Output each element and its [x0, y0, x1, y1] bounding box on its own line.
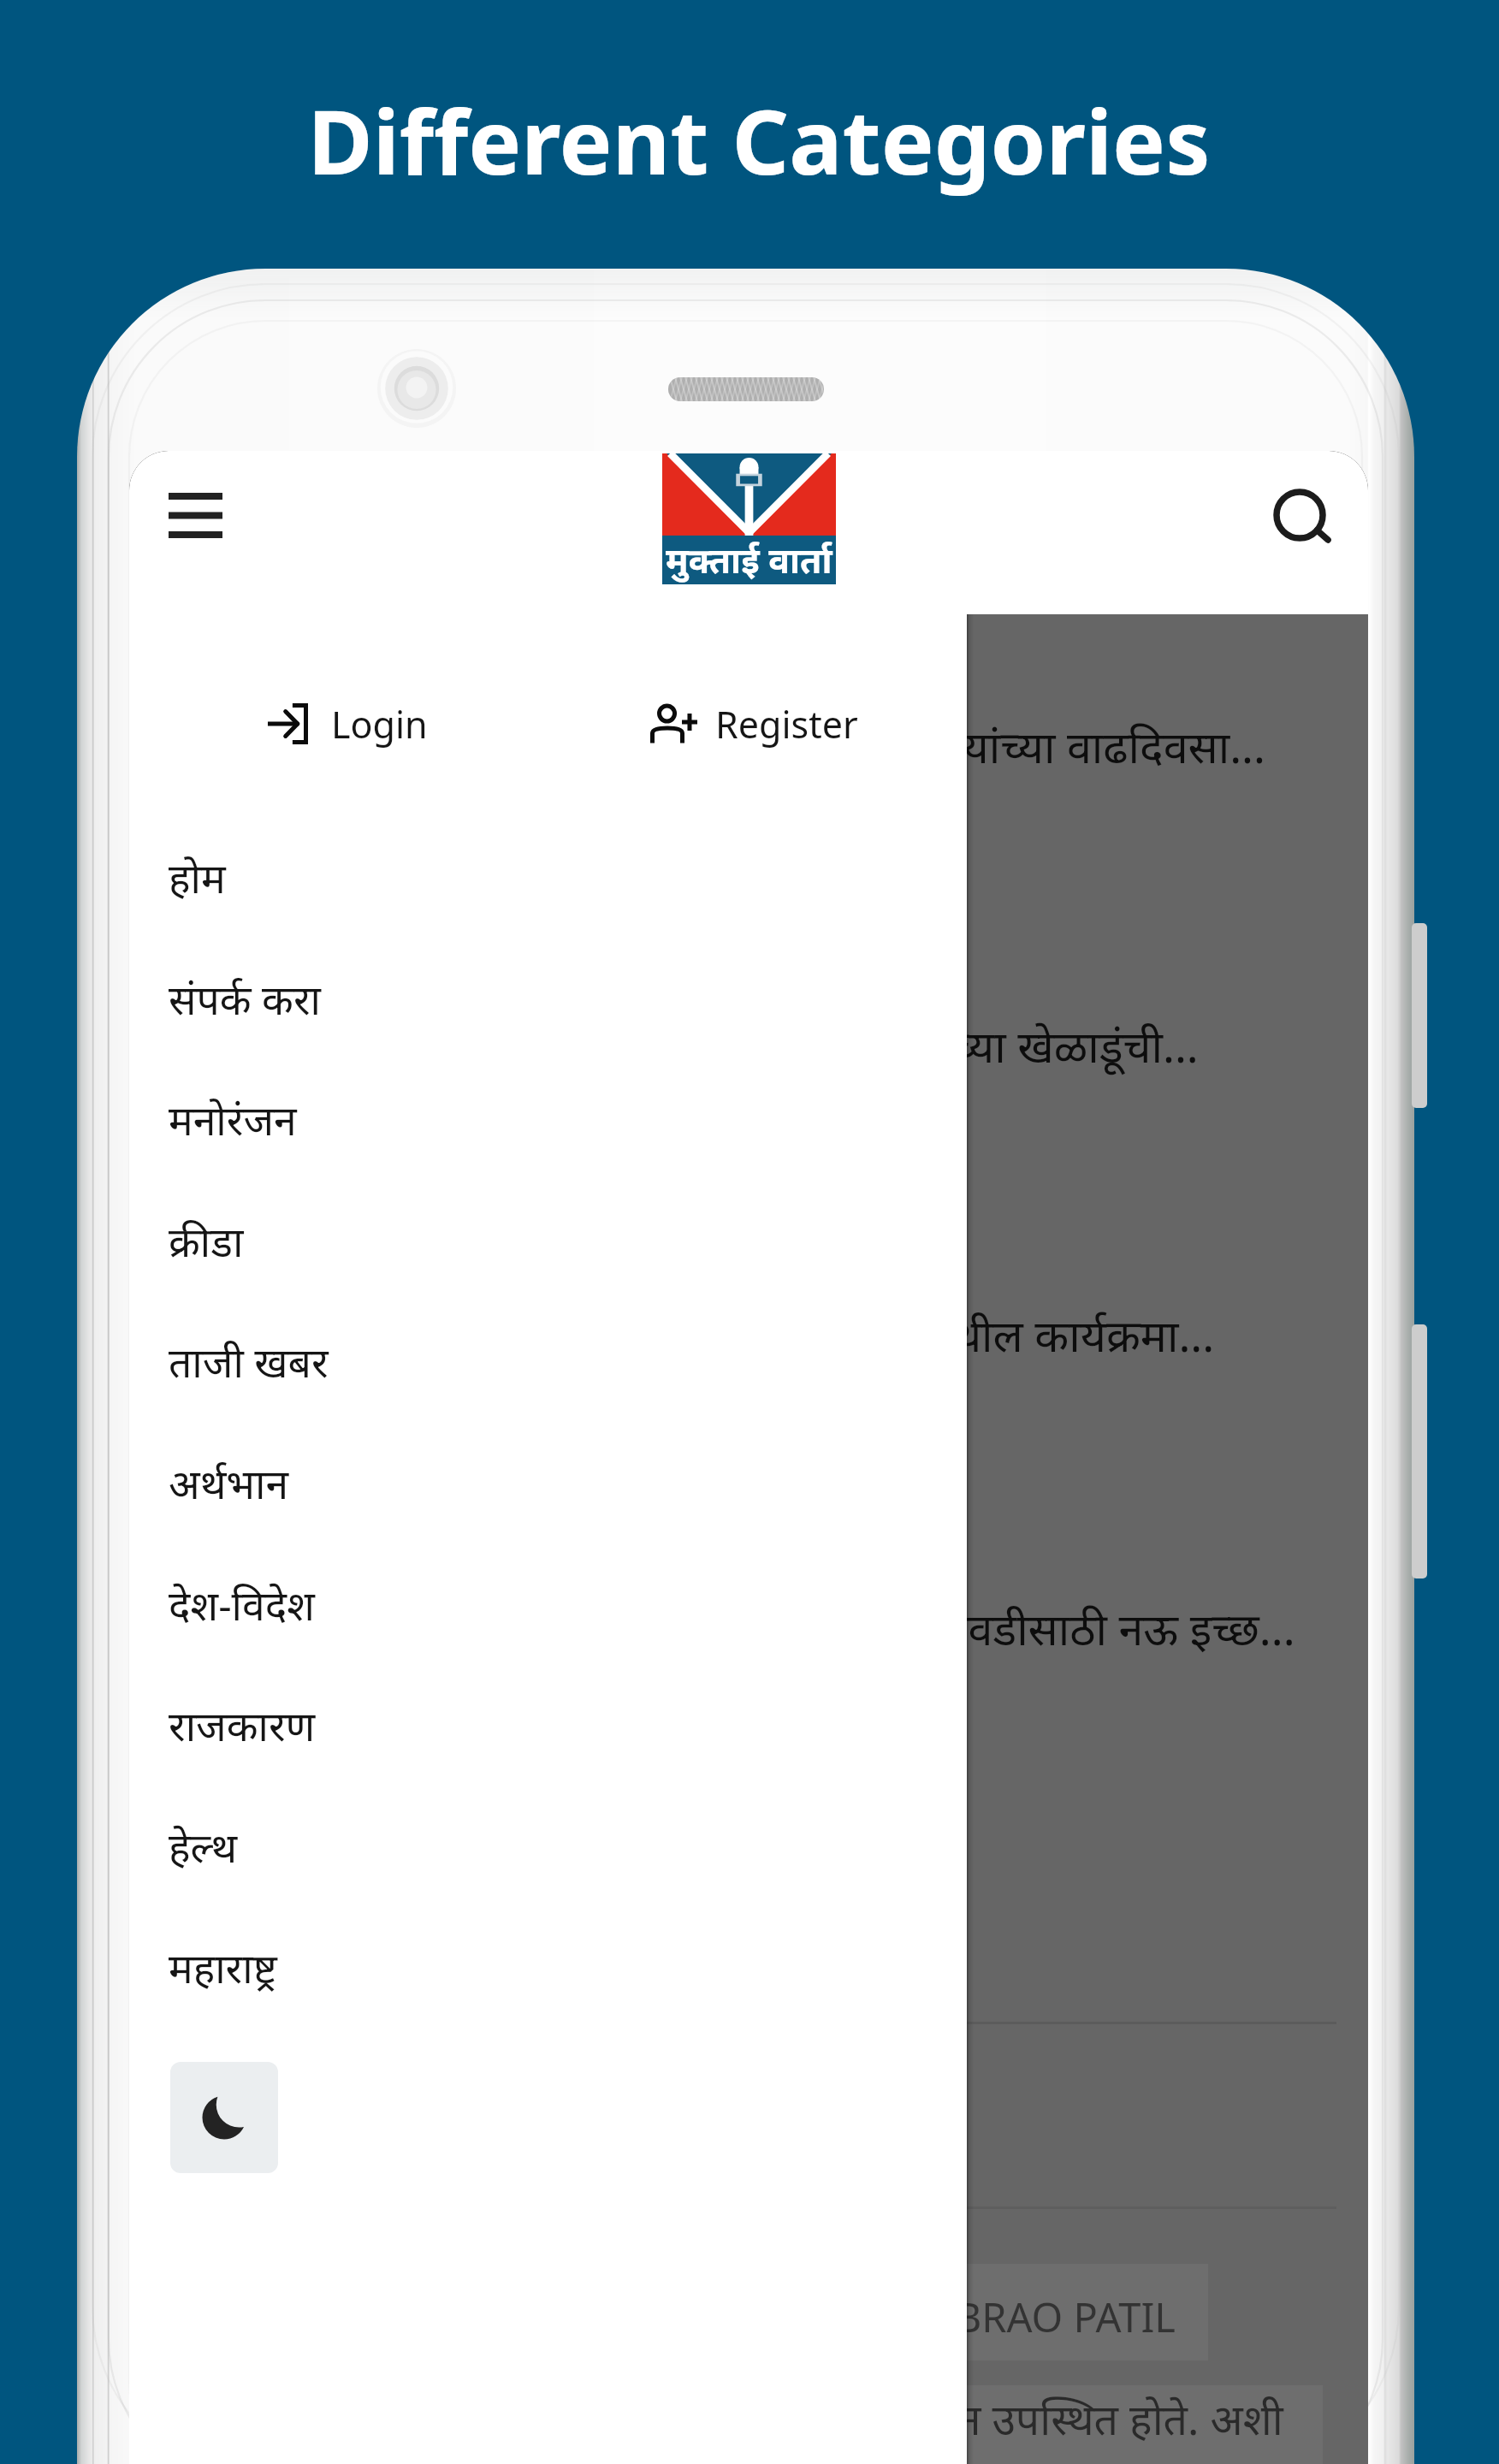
staticText: ून उपस्थित होते. अशी	[932, 2390, 1283, 2448]
staticText: क्रीडा	[169, 1213, 244, 1269]
staticText: मुक्ताई वार्ता	[666, 536, 832, 583]
button[interactable]: संपर्क करा	[129, 939, 967, 1058]
staticText: नगरच्या खेळाडूंची...	[883, 1015, 1199, 1075]
button[interactable]: हेल्थ	[129, 1786, 967, 1906]
staticText: मनोरंजन	[169, 1092, 297, 1147]
button[interactable]: Toggle dark mode	[170, 2062, 278, 2173]
staticText: ताजी खबर	[169, 1334, 329, 1389]
staticText: अर्थभान	[169, 1455, 289, 1511]
staticText: देश-विदेश	[169, 1577, 315, 1632]
staticText: हेल्थ	[169, 1819, 238, 1875]
staticText: LABRAO PATIL	[909, 2289, 1176, 2344]
staticText: ाजरे येथील कार्यक्रमा...	[827, 1304, 1215, 1365]
staticText: ांच्या निवडीसाठी नऊ इच्छ...	[827, 1597, 1295, 1658]
staticText: राजकारण	[169, 1697, 316, 1753]
staticText: Different Categories	[9, 80, 1499, 201]
button[interactable]: Open navigation menu	[135, 455, 255, 575]
button[interactable]: Login	[242, 674, 453, 773]
button[interactable]: देश-विदेश	[129, 1544, 967, 1664]
button[interactable]: अर्थभान	[129, 1423, 967, 1543]
staticText: संपर्क करा	[169, 971, 321, 1027]
staticText: Register	[715, 699, 858, 749]
button[interactable]: Muktai Varta home	[662, 453, 836, 584]
button[interactable]: राजकारण	[129, 1665, 967, 1785]
button[interactable]: ताजी खबर	[129, 1301, 967, 1421]
staticText: होम	[169, 850, 226, 905]
staticText: महाराष्ट्र	[169, 1940, 277, 1995]
staticText: ाबळे पाटील यांच्या वाढदिवसा...	[742, 715, 1265, 776]
button[interactable]: Register	[625, 674, 884, 773]
button[interactable]: क्रीडा	[129, 1181, 967, 1300]
button[interactable]: होम	[129, 817, 967, 937]
button[interactable]: Search	[1240, 455, 1360, 575]
staticText: Login	[331, 699, 428, 749]
button[interactable]: महाराष्ट्र	[129, 1907, 967, 2027]
button[interactable]: मनोरंजन	[129, 1059, 967, 1179]
